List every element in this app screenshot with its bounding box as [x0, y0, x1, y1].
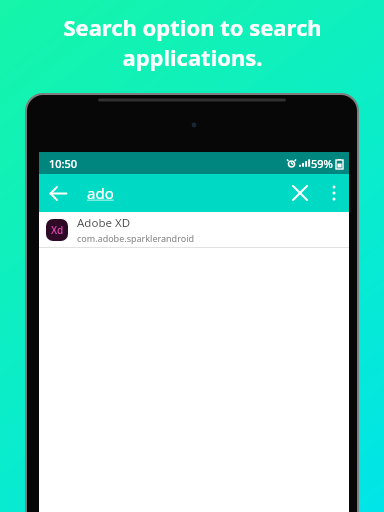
staticText: Xd: [51, 223, 64, 237]
staticText: Adobe XD: [77, 215, 131, 231]
staticText: Search option to search: [63, 12, 322, 42]
button[interactable]: More options: [319, 174, 349, 212]
staticText: applications.: [122, 42, 263, 72]
button[interactable]: Back: [39, 174, 77, 212]
button[interactable]: ado: [77, 174, 281, 212]
button[interactable]: Clear search: [281, 174, 319, 212]
staticText: ado: [87, 183, 114, 203]
staticText: 59%: [311, 156, 333, 171]
button[interactable]: Xd: [39, 212, 349, 247]
staticText: 10:50: [49, 156, 78, 171]
staticText: com.adobe.sparklerandroid: [77, 232, 194, 244]
